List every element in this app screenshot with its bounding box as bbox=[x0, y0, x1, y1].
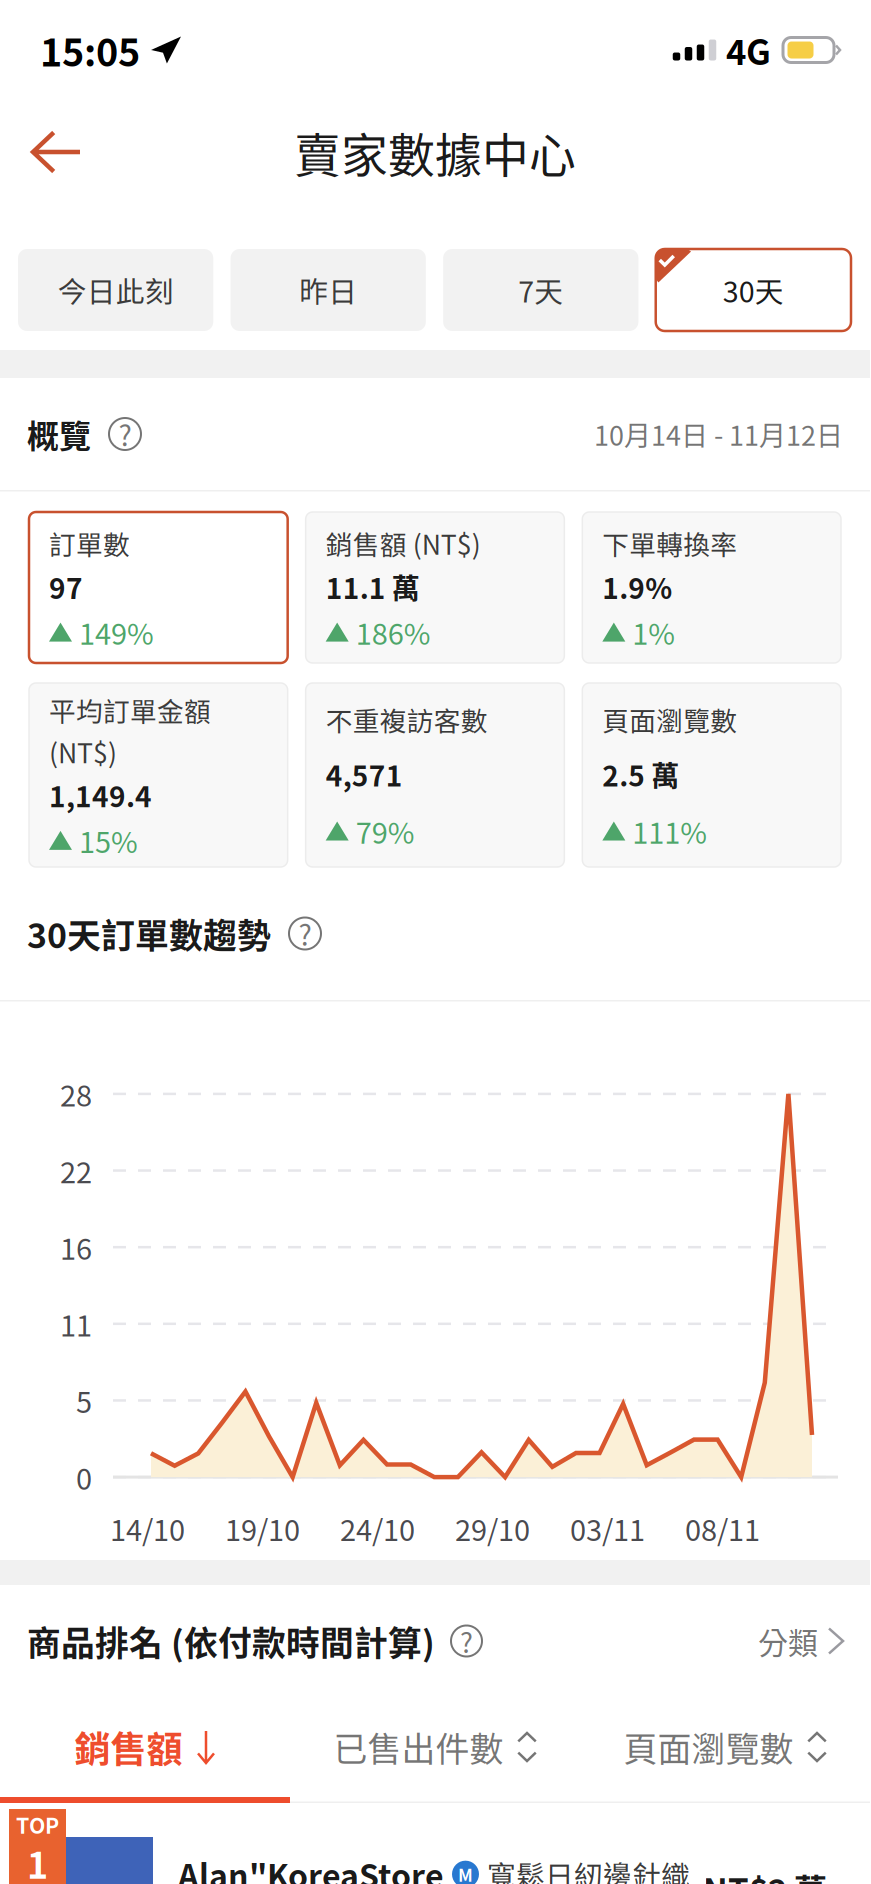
button[interactable]: 下單轉換率 bbox=[582, 512, 841, 663]
staticText: 97 bbox=[49, 566, 83, 607]
staticText: 7天 bbox=[518, 269, 563, 311]
staticText: 概覽 bbox=[27, 411, 91, 457]
staticText: (NT$) bbox=[49, 732, 117, 771]
staticText: TOP bbox=[16, 1809, 59, 1840]
staticText: 0 bbox=[76, 1456, 92, 1498]
button[interactable]: Alan"KoreaStore bbox=[0, 1803, 870, 1884]
staticText: 15:05 bbox=[40, 23, 140, 77]
staticText: 1 bbox=[27, 1837, 48, 1884]
button[interactable]: 7天 bbox=[443, 249, 638, 331]
staticText: 銷售額 bbox=[74, 1721, 182, 1773]
button[interactable]: 今日此刻 bbox=[18, 249, 213, 331]
staticText: 頁面瀏覽數 bbox=[623, 1722, 793, 1771]
staticText: 111% bbox=[632, 810, 707, 852]
staticText: ? bbox=[298, 913, 311, 954]
button[interactable]: 已售出件數 bbox=[290, 1697, 580, 1797]
staticText: 11 bbox=[60, 1303, 92, 1345]
staticText: 不重複訪客數 bbox=[326, 700, 488, 739]
staticText: 24/10 bbox=[340, 1507, 415, 1549]
button[interactable]: 銷售額 bbox=[0, 1697, 290, 1797]
staticText: 15% bbox=[79, 819, 138, 861]
staticText: 分類 bbox=[758, 1619, 818, 1663]
staticText: 訂單數 bbox=[49, 524, 130, 562]
staticText: M bbox=[458, 1862, 473, 1884]
button[interactable]: 頁面瀏覽數 bbox=[582, 683, 841, 867]
staticText: 03/11 bbox=[570, 1507, 645, 1549]
staticText: 186% bbox=[356, 611, 431, 653]
staticText: 頁面瀏覽數 bbox=[602, 700, 737, 739]
button[interactable]: 30天 bbox=[656, 249, 851, 331]
staticText: 149% bbox=[79, 611, 154, 653]
staticText: 4G bbox=[726, 25, 771, 75]
button[interactable]: 分類 bbox=[758, 1599, 843, 1683]
staticText: 08/11 bbox=[685, 1507, 760, 1549]
button[interactable]: 昨日 bbox=[231, 249, 426, 331]
staticText: 今日此刻 bbox=[58, 269, 174, 311]
staticText: 賣家數據中心 bbox=[294, 118, 576, 186]
button[interactable]: Back bbox=[0, 106, 104, 197]
staticText: 5 bbox=[76, 1379, 92, 1421]
button[interactable]: 平均訂單金額 bbox=[29, 683, 288, 867]
staticText: 1,149.4 bbox=[49, 775, 152, 815]
button[interactable]: 頁面瀏覽數 bbox=[580, 1697, 870, 1797]
staticText: 平均訂單金額 bbox=[49, 691, 211, 729]
staticText: 14/10 bbox=[110, 1507, 185, 1549]
staticText: 銷售額 (NT$) bbox=[326, 524, 481, 562]
staticText: NT$2 萬 bbox=[703, 1865, 827, 1884]
staticText: 1.9% bbox=[602, 566, 672, 607]
staticText: 30天訂單數趨勢 bbox=[27, 909, 271, 958]
staticText: Alan"KoreaStore bbox=[178, 1851, 444, 1884]
staticText: 79% bbox=[356, 810, 415, 852]
staticText: 11.1 萬 bbox=[326, 566, 420, 607]
staticText: 28 bbox=[60, 1073, 92, 1115]
staticText: 2.5 萬 bbox=[602, 754, 679, 794]
staticText: ? bbox=[118, 414, 131, 454]
staticText: 下單轉換率 bbox=[602, 524, 737, 562]
staticText: 22 bbox=[60, 1149, 92, 1191]
staticText: 29/10 bbox=[455, 1507, 530, 1549]
staticText: 商品排名 (依付款時間計算) bbox=[27, 1617, 435, 1665]
button[interactable]: 銷售額 (NT$) bbox=[306, 512, 564, 663]
staticText: 1% bbox=[632, 611, 675, 653]
staticText: 昨日 bbox=[299, 269, 357, 311]
staticText: 4,571 bbox=[326, 754, 403, 794]
staticText: 30天 bbox=[723, 269, 784, 311]
button[interactable]: 不重複訪客數 bbox=[306, 683, 564, 867]
staticText: ? bbox=[460, 1621, 473, 1661]
staticText: 10月14日 - 11月12日 bbox=[594, 414, 843, 454]
staticText: 16 bbox=[60, 1226, 92, 1268]
staticText: 19/10 bbox=[225, 1507, 300, 1549]
staticText: 寬鬆日紉邊針織 bbox=[487, 1853, 690, 1884]
staticText: 已售出件數 bbox=[333, 1722, 503, 1771]
button[interactable]: 訂單數 bbox=[29, 512, 288, 663]
